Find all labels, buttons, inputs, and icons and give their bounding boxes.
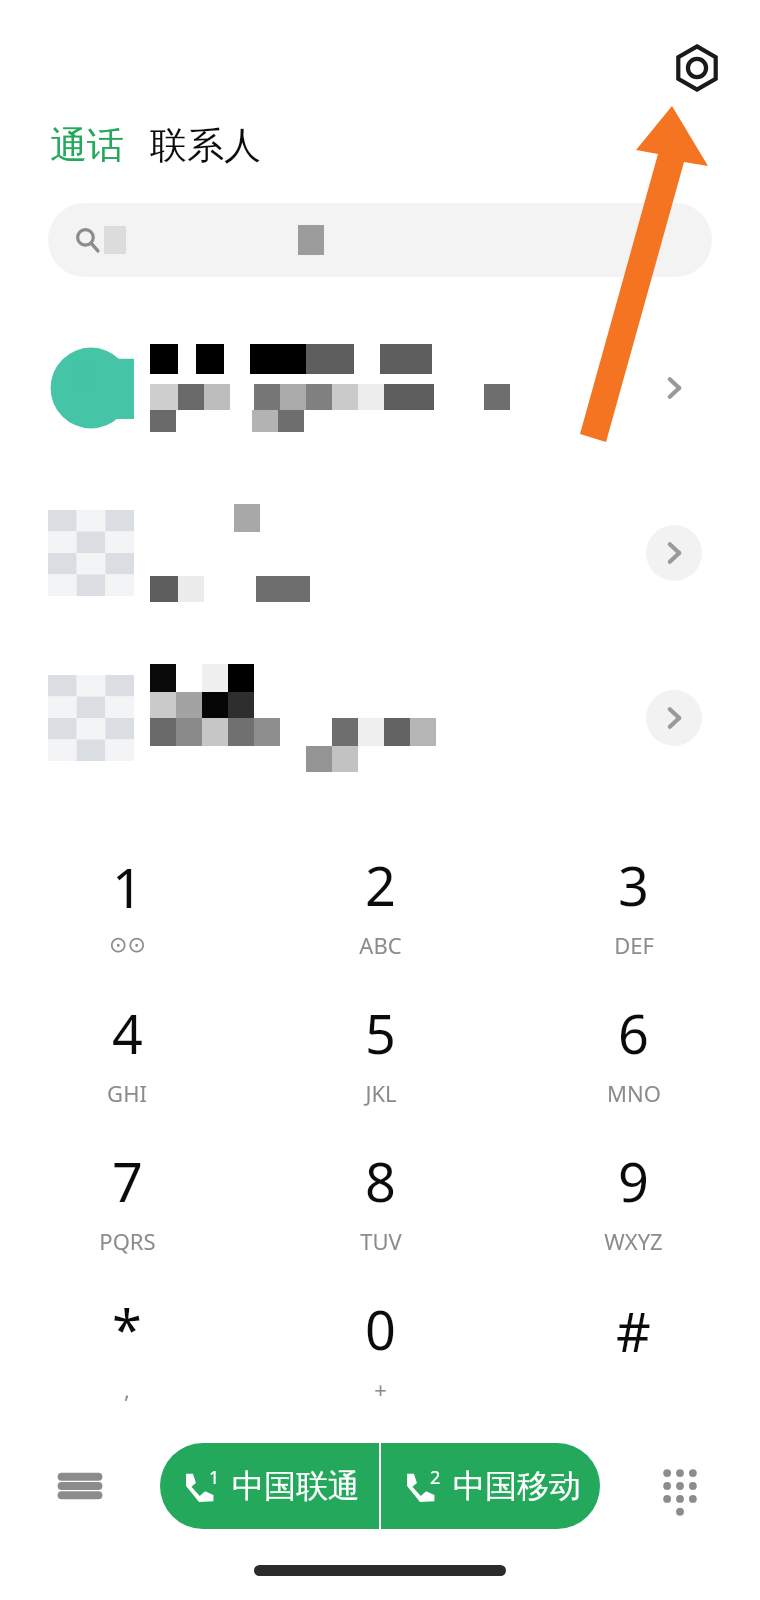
button[interactable]: Open call details <box>0 305 760 470</box>
staticText: PQRS <box>99 1226 156 1256</box>
button[interactable]: Menu <box>0 1428 160 1544</box>
staticText: 2 <box>430 1465 441 1490</box>
staticText: 通话 <box>50 122 124 169</box>
button[interactable]: 1 <box>0 830 254 978</box>
staticText: 7 <box>112 1144 143 1218</box>
button[interactable]: 8 <box>254 1126 507 1274</box>
staticText: * <box>112 1292 142 1366</box>
button[interactable]: Settings <box>668 39 726 97</box>
button[interactable]: Search <box>48 203 712 277</box>
button[interactable]: Open call details <box>646 360 702 416</box>
staticText: 中国移动 <box>453 1466 581 1506</box>
staticText: 中国联通 <box>232 1466 360 1506</box>
button[interactable]: Dialpad <box>600 1428 760 1544</box>
staticText: 5 <box>365 996 396 1070</box>
staticText: 3 <box>618 848 649 922</box>
staticText: TUV <box>360 1226 402 1256</box>
staticText: WXYZ <box>604 1226 663 1256</box>
button[interactable]: Open call details <box>0 635 760 800</box>
staticText: ⊙⊙ <box>109 932 146 958</box>
button[interactable]: # <box>507 1274 760 1422</box>
staticText: ABC <box>359 930 402 960</box>
staticText: 0 <box>365 1292 396 1366</box>
staticText: MNO <box>607 1078 661 1108</box>
button[interactable]: 7 <box>0 1126 254 1274</box>
button[interactable]: Open call details <box>0 470 760 635</box>
staticText: + <box>374 1374 387 1404</box>
staticText: 8 <box>365 1144 396 1218</box>
button[interactable]: 4 <box>0 978 254 1126</box>
button[interactable]: 1 <box>160 1443 379 1529</box>
button[interactable]: 9 <box>507 1126 760 1274</box>
staticText: # <box>616 1294 651 1368</box>
staticText: 6 <box>618 996 649 1070</box>
button[interactable]: 联系人 <box>150 118 261 173</box>
button[interactable]: Open call details <box>646 525 702 581</box>
staticText: 1 <box>112 850 143 924</box>
staticText: GHI <box>107 1078 147 1108</box>
staticText: 1 <box>209 1465 220 1490</box>
button[interactable]: Open call details <box>646 690 702 746</box>
button[interactable]: 0 <box>254 1274 507 1422</box>
staticText: 4 <box>112 996 143 1070</box>
button[interactable]: 6 <box>507 978 760 1126</box>
staticText: 2 <box>365 848 396 922</box>
staticText: JKL <box>365 1078 397 1108</box>
button[interactable]: 2 <box>381 1443 600 1529</box>
staticText: DEF <box>614 930 654 960</box>
staticText: 9 <box>618 1144 649 1218</box>
staticText: 联系人 <box>150 122 261 169</box>
button[interactable]: 2 <box>254 830 507 978</box>
staticText: , <box>124 1374 130 1404</box>
button[interactable]: 通话 <box>50 118 124 173</box>
button[interactable]: 3 <box>507 830 760 978</box>
button[interactable]: * <box>0 1274 254 1422</box>
button[interactable]: 5 <box>254 978 507 1126</box>
